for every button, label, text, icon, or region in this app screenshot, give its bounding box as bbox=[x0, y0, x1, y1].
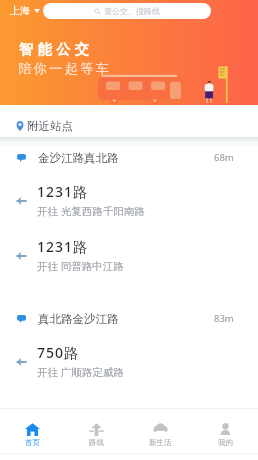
staticText: 1231路 bbox=[37, 237, 89, 256]
button[interactable]: Routes bbox=[64, 408, 128, 460]
button[interactable]: 查公交、搜路线 bbox=[43, 3, 211, 19]
staticText: 1231路 bbox=[37, 182, 89, 201]
staticText: 68m bbox=[214, 151, 234, 164]
staticText: 我的 bbox=[218, 438, 233, 447]
button[interactable]: 金沙江路真北路 bbox=[0, 146, 258, 169]
button[interactable]: 1231路 bbox=[0, 175, 258, 225]
button[interactable]: 真北路金沙江路 bbox=[0, 307, 258, 330]
button[interactable]: Home bbox=[0, 408, 64, 460]
staticText: 开往 广顺路定威路 bbox=[37, 365, 124, 379]
staticText: 上海 bbox=[10, 4, 30, 17]
staticText: 路线 bbox=[89, 438, 104, 447]
button[interactable]: Mine bbox=[193, 408, 258, 460]
button[interactable]: New Life bbox=[128, 408, 193, 460]
button[interactable]: 1231路 bbox=[0, 230, 258, 280]
staticText: 开往 光复西路千阳南路 bbox=[37, 204, 145, 218]
staticText: 陪你一起等车 bbox=[17, 60, 110, 76]
staticText: 开往 同普路中江路 bbox=[37, 259, 124, 273]
staticText: 金沙江路真北路 bbox=[38, 151, 119, 165]
staticText: 新生活 bbox=[149, 438, 172, 447]
staticText: 查公交、搜路线 bbox=[104, 6, 160, 16]
staticText: 附近站点 bbox=[27, 119, 73, 133]
staticText: 首页 bbox=[25, 438, 40, 447]
staticText: 智能公交 bbox=[17, 41, 91, 59]
staticText: 83m bbox=[214, 312, 234, 325]
staticText: 750路 bbox=[37, 343, 80, 362]
button[interactable]: 750路 bbox=[0, 336, 258, 386]
button[interactable]: 上海 bbox=[8, 3, 42, 18]
staticText: 真北路金沙江路 bbox=[38, 312, 119, 326]
